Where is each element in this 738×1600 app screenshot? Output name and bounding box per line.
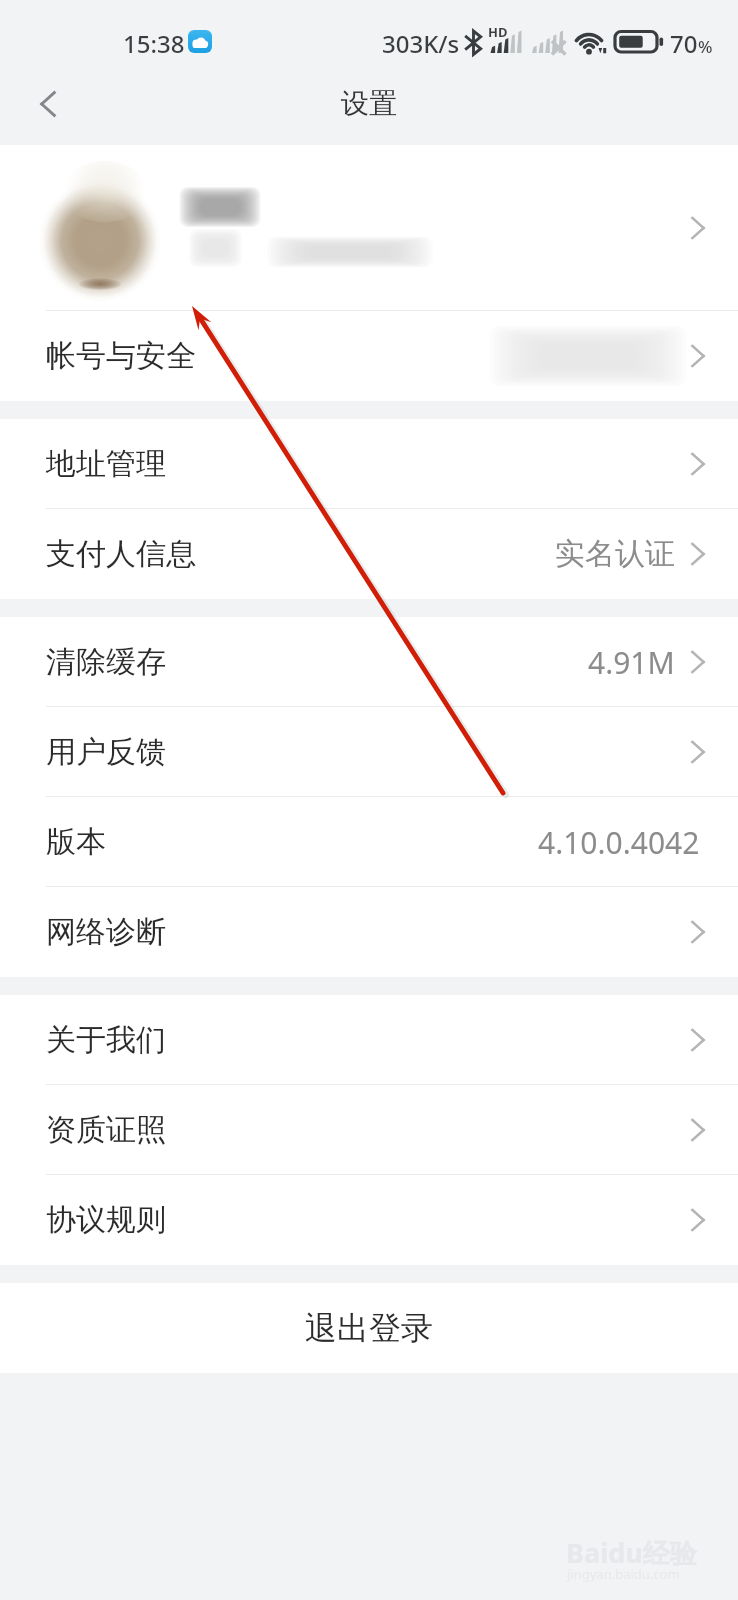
- staticText: 4.91M: [588, 642, 675, 683]
- staticText: 支付人信息: [46, 535, 196, 573]
- staticText: 实名认证: [555, 535, 675, 573]
- staticText: 网络诊断: [46, 913, 166, 951]
- staticText: 地址管理: [46, 445, 166, 483]
- button[interactable]: 资质证照: [0, 1085, 738, 1175]
- staticText: 帐号与安全: [46, 337, 196, 375]
- button[interactable]: 清除缓存: [0, 617, 738, 707]
- staticText: 版本: [46, 823, 106, 861]
- staticText: 协议规则: [46, 1201, 166, 1239]
- button[interactable]: Back: [3, 62, 93, 145]
- button[interactable]: 支付人信息: [0, 509, 738, 599]
- staticText: 用户反馈: [46, 733, 166, 771]
- staticText: jingyan.baidu.com: [567, 1565, 680, 1583]
- staticText: 资质证照: [46, 1111, 166, 1149]
- button[interactable]: 个人资料: [0, 145, 738, 311]
- button[interactable]: 退出登录: [0, 1283, 738, 1373]
- staticText: 关于我们: [46, 1021, 166, 1059]
- staticText: 退出登录: [305, 1308, 433, 1348]
- staticText: 清除缓存: [46, 643, 166, 681]
- button[interactable]: 关于我们: [0, 995, 738, 1085]
- staticText: 70: [670, 27, 698, 60]
- staticText: 设置: [341, 86, 397, 121]
- button[interactable]: 帐号与安全: [0, 311, 738, 401]
- button[interactable]: 地址管理: [0, 419, 738, 509]
- staticText: Baidu经验: [566, 1534, 697, 1571]
- button[interactable]: 版本: [0, 797, 738, 887]
- staticText: %: [698, 35, 713, 58]
- staticText: 303K/s: [382, 27, 460, 60]
- staticText: 15:38: [123, 27, 185, 60]
- button[interactable]: 用户反馈: [0, 707, 738, 797]
- staticText: 4.10.0.4042: [538, 822, 700, 863]
- button[interactable]: 协议规则: [0, 1175, 738, 1265]
- button[interactable]: 网络诊断: [0, 887, 738, 977]
- staticText: HD: [488, 23, 508, 41]
